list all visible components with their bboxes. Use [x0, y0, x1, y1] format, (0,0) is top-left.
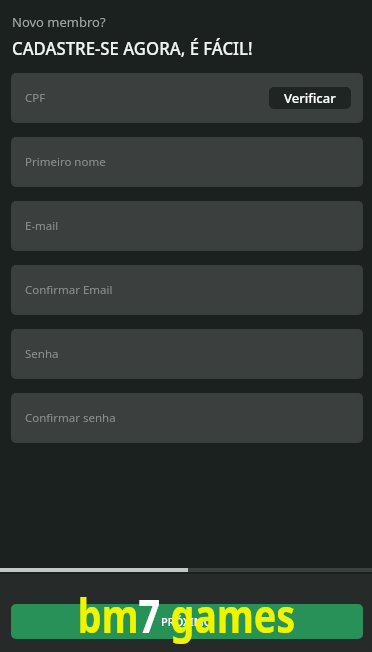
button[interactable]: Verificar — [269, 87, 351, 109]
button[interactable]: E-mail — [11, 201, 363, 251]
staticText: Primeiro nome — [25, 154, 106, 170]
staticText: 7 — [138, 584, 161, 647]
button[interactable]: Primeiro nome — [11, 137, 363, 187]
staticText: Senha — [25, 346, 59, 362]
button[interactable]: Senha — [11, 329, 363, 379]
staticText: games — [161, 584, 295, 647]
staticText: PRÓXIMO — [161, 614, 213, 629]
staticText: Novo membro? — [12, 13, 106, 31]
button[interactable]: PRÓXIMO — [11, 604, 363, 639]
button[interactable]: CPF — [11, 73, 363, 123]
staticText: Verificar — [284, 89, 336, 107]
staticText: CADASTRE-SE AGORA, É FÁCIL! — [12, 36, 253, 61]
button[interactable]: Confirmar senha — [11, 393, 363, 443]
staticText: E-mail — [25, 218, 59, 234]
staticText: bm — [78, 584, 138, 647]
staticText: Confirmar senha — [25, 410, 116, 426]
staticText: Confirmar Email — [25, 282, 113, 298]
button[interactable]: Confirmar Email — [11, 265, 363, 315]
staticText: CPF — [25, 90, 46, 106]
